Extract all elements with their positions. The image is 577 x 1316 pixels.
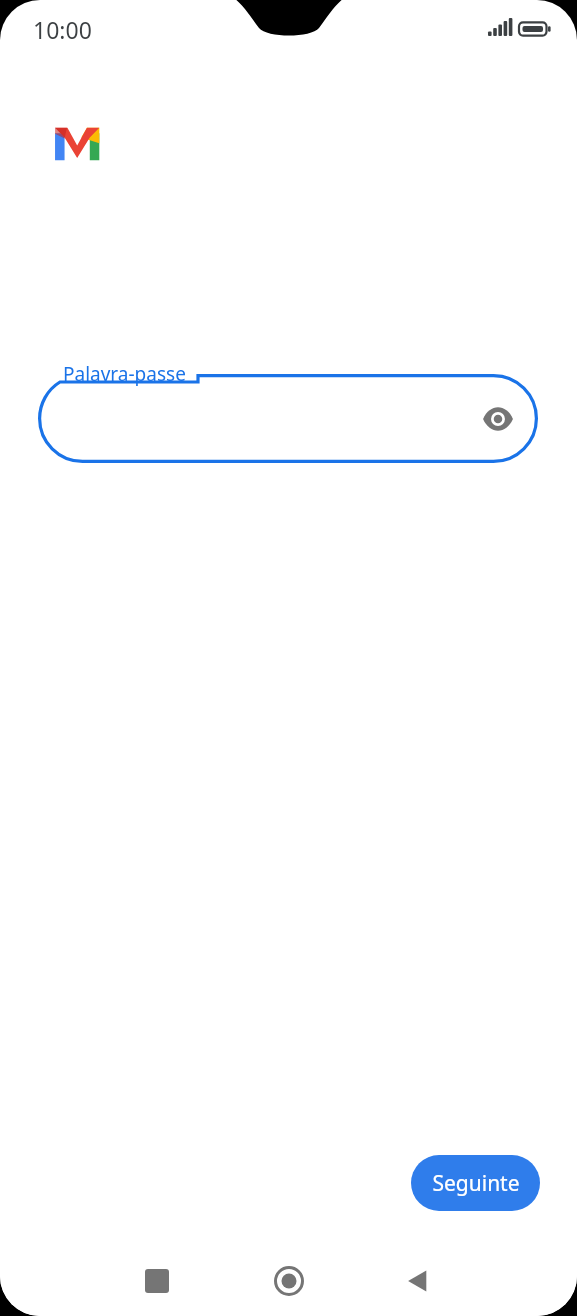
staticText: Seguinte [432, 1169, 520, 1198]
staticText: Palavra-passe [63, 361, 186, 387]
button[interactable]: Mostrar palavra-passe [474, 395, 522, 443]
button[interactable]: Gmail [38, 105, 116, 183]
button[interactable]: Seguinte [411, 1155, 540, 1211]
button[interactable]: Recentes [133, 1257, 181, 1305]
button[interactable]: Voltar [394, 1257, 442, 1305]
button[interactable]: Mostrar palavra-passe [38, 374, 538, 463]
button[interactable]: Início [265, 1257, 313, 1305]
staticText: 10:00 [33, 14, 92, 45]
